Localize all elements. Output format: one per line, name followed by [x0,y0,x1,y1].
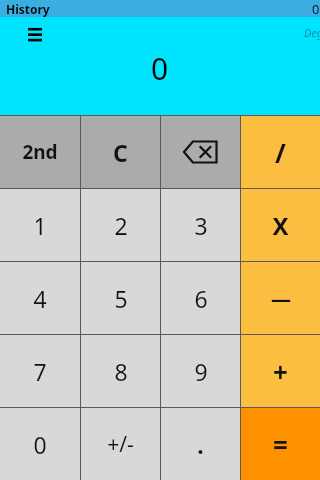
button[interactable]: +/- [81,408,160,480]
button[interactable]: — [241,262,320,334]
staticText: Deg [304,25,320,40]
staticText: 3 [194,210,208,241]
button[interactable]: 8 [81,335,160,407]
button[interactable]: . [161,408,240,480]
staticText: + [273,354,288,389]
button[interactable]: 5 [81,262,160,334]
button[interactable]: / [241,116,320,188]
staticText: X [272,209,289,242]
button[interactable]: 1 [0,189,80,261]
button[interactable]: Menu [22,21,48,47]
button[interactable]: 3 [161,189,240,261]
button[interactable]: History [0,0,56,17]
staticText: History [6,1,50,17]
button[interactable]: + [241,335,320,407]
staticText: 8 [114,356,128,387]
button[interactable]: Backspace [161,116,240,188]
staticText: +/- [107,430,134,459]
button[interactable]: 7 [0,335,80,407]
staticText: 0 [33,429,47,460]
button[interactable]: 6 [161,262,240,334]
staticText: 6 [194,283,208,314]
button[interactable]: 2nd [0,116,80,188]
button[interactable]: X [241,189,320,261]
button[interactable]: 4 [0,262,80,334]
staticText: / [275,135,286,170]
staticText: 2 [114,210,128,241]
staticText: 2nd [22,139,58,165]
staticText: — [271,285,291,312]
staticText: . [197,429,204,460]
button[interactable]: 0 [0,408,80,480]
staticText: 1 [33,210,47,241]
staticText: 5 [114,283,128,314]
button[interactable]: 2 [81,189,160,261]
staticText: = [273,427,288,462]
staticText: 0 [312,0,320,17]
staticText: 7 [33,356,47,387]
staticText: 4 [33,283,47,314]
button[interactable]: C [81,116,160,188]
staticText: 9 [194,356,208,387]
staticText: C [113,137,128,168]
button[interactable]: = [241,408,320,480]
button[interactable]: 9 [161,335,240,407]
staticText: 0 [151,48,169,89]
